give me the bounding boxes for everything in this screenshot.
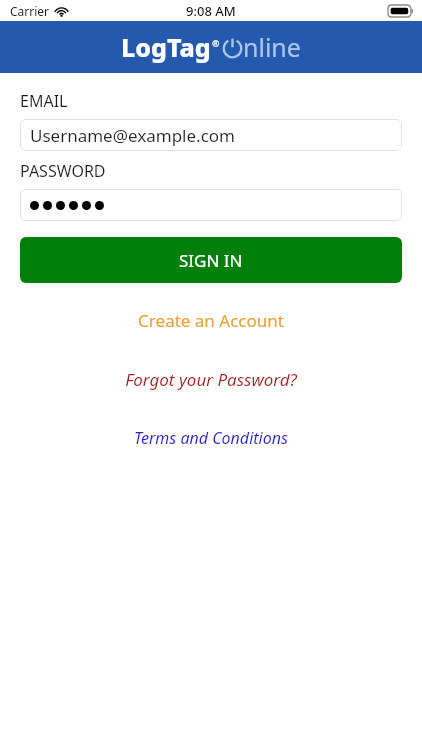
button[interactable]: Username@example.com xyxy=(20,119,402,151)
button[interactable]: Terms and Conditions xyxy=(0,424,422,452)
staticText: Terms and Conditions xyxy=(134,427,288,449)
staticText: Carrier xyxy=(10,3,50,19)
staticText: Forgot your Password? xyxy=(125,368,297,391)
staticText: Create an Account xyxy=(138,309,284,332)
staticText: nline xyxy=(243,30,301,64)
button[interactable]: SIGN IN xyxy=(20,237,402,283)
button[interactable] xyxy=(20,189,402,221)
button[interactable]: Forgot your Password? xyxy=(0,365,422,394)
staticText: EMAIL xyxy=(20,90,68,112)
staticText: 9:08 AM xyxy=(186,2,236,20)
staticText: Username@example.com xyxy=(30,124,235,147)
button[interactable]: Create an Account xyxy=(0,306,422,335)
staticText: ® xyxy=(212,37,220,49)
staticText: LogTag xyxy=(121,30,211,64)
staticText: PASSWORD xyxy=(20,160,106,182)
staticText: SIGN IN xyxy=(179,249,243,272)
